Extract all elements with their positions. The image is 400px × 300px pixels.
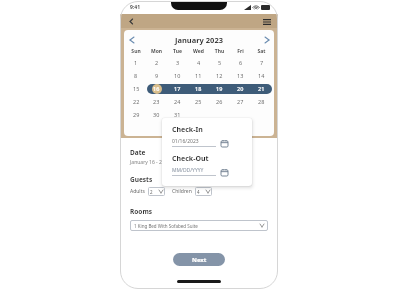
staticText: 9:41 bbox=[130, 4, 140, 11]
button[interactable]: 19 bbox=[209, 82, 230, 95]
staticText: January 16 - 21, 2023 bbox=[130, 159, 179, 166]
staticText: Sun bbox=[126, 48, 146, 55]
staticText: 14 bbox=[258, 72, 265, 79]
staticText: 10 bbox=[174, 72, 181, 79]
button[interactable]: 13 bbox=[230, 69, 251, 82]
button[interactable]: 12 bbox=[209, 69, 230, 82]
staticText: 9 bbox=[155, 72, 159, 79]
button[interactable]: 30 bbox=[146, 108, 167, 121]
staticText: Mon bbox=[146, 48, 167, 55]
button[interactable]: 9 bbox=[146, 69, 167, 82]
staticText: 13 bbox=[237, 72, 244, 79]
button[interactable]: 21 bbox=[251, 82, 272, 95]
button[interactable]: 20 bbox=[230, 82, 251, 95]
button[interactable]: 1 King Bed With Sofabed Suite bbox=[130, 220, 268, 231]
staticText: 19 bbox=[216, 85, 223, 92]
staticText: 28 bbox=[258, 98, 265, 105]
button[interactable]: 5 bbox=[209, 56, 230, 69]
staticText: 22 bbox=[133, 98, 140, 105]
staticText: 4 bbox=[197, 59, 201, 66]
staticText: 17 bbox=[174, 85, 181, 92]
staticText: Tue bbox=[167, 48, 188, 55]
button[interactable]: 24 bbox=[167, 95, 188, 108]
staticText: 3 bbox=[176, 59, 180, 66]
staticText: Adults bbox=[130, 188, 145, 195]
staticText: 16 bbox=[153, 85, 160, 92]
staticText: 29 bbox=[133, 111, 140, 118]
staticText: 15 bbox=[133, 85, 140, 92]
staticText: 01/16/2023 bbox=[172, 138, 199, 145]
staticText: 2 bbox=[155, 59, 159, 66]
staticText: 4 bbox=[197, 189, 200, 195]
button[interactable]: 8 bbox=[126, 69, 146, 82]
button[interactable]: 2 bbox=[148, 187, 165, 196]
staticText: 31 bbox=[174, 111, 181, 118]
staticText: Next bbox=[192, 256, 207, 264]
staticText: Wed bbox=[188, 48, 209, 55]
staticText: 26 bbox=[216, 98, 223, 105]
button[interactable]: Open calendar bbox=[220, 168, 228, 176]
staticText: Guests bbox=[130, 175, 153, 184]
button[interactable]: 17 bbox=[167, 82, 188, 95]
button[interactable]: 31 bbox=[167, 108, 188, 121]
staticText: Rooms bbox=[130, 207, 152, 216]
button[interactable]: 4 bbox=[188, 56, 209, 69]
staticText: 12 bbox=[216, 72, 223, 79]
staticText: Check-Out bbox=[172, 154, 209, 164]
staticText: MM/DD/YYYY bbox=[172, 167, 204, 174]
staticText: Check-In bbox=[172, 125, 203, 135]
button[interactable]: 4 bbox=[195, 187, 212, 196]
staticText: 18 bbox=[195, 85, 202, 92]
button[interactable]: Open calendar bbox=[220, 139, 228, 147]
button[interactable]: 26 bbox=[209, 95, 230, 108]
button[interactable]: 23 bbox=[146, 95, 167, 108]
staticText: 1 bbox=[134, 59, 138, 66]
button[interactable]: 18 bbox=[188, 82, 209, 95]
staticText: 27 bbox=[237, 98, 244, 105]
staticText: 25 bbox=[195, 98, 202, 105]
button[interactable]: 2 bbox=[146, 56, 167, 69]
staticText: Children bbox=[172, 188, 192, 195]
button[interactable]: 3 bbox=[167, 56, 188, 69]
staticText: Date bbox=[130, 148, 146, 157]
button[interactable]: 11 bbox=[188, 69, 209, 82]
button[interactable]: 6 bbox=[230, 56, 251, 69]
staticText: 11 bbox=[195, 72, 202, 79]
button[interactable]: 10 bbox=[167, 69, 188, 82]
staticText: 6 bbox=[239, 59, 243, 66]
staticText: Sat bbox=[251, 48, 272, 55]
staticText: January 2023 bbox=[137, 35, 261, 45]
button[interactable]: Back bbox=[126, 16, 136, 26]
staticText: 21 bbox=[258, 85, 265, 92]
button[interactable]: 27 bbox=[230, 95, 251, 108]
button[interactable]: 15 bbox=[126, 82, 146, 95]
staticText: 8 bbox=[134, 72, 138, 79]
button[interactable]: Next month bbox=[261, 34, 272, 45]
staticText: 5 bbox=[218, 59, 222, 66]
staticText: 24 bbox=[174, 98, 181, 105]
button[interactable]: 7 bbox=[251, 56, 272, 69]
button[interactable]: 28 bbox=[251, 95, 272, 108]
button[interactable]: Menu bbox=[261, 16, 272, 27]
button[interactable]: 16 bbox=[146, 82, 167, 95]
button[interactable]: Next bbox=[173, 253, 225, 266]
button[interactable]: 29 bbox=[126, 108, 146, 121]
staticText: 23 bbox=[153, 98, 160, 105]
staticText: 20 bbox=[237, 85, 244, 92]
staticText: 1 King Bed With Sofabed Suite bbox=[134, 223, 198, 229]
staticText: 30 bbox=[153, 111, 160, 118]
button[interactable]: 14 bbox=[251, 69, 272, 82]
staticText: 7 bbox=[260, 59, 264, 66]
staticText: 2 bbox=[150, 189, 153, 195]
button[interactable]: 22 bbox=[126, 95, 146, 108]
staticText: Thu bbox=[209, 48, 230, 55]
staticText: Fri bbox=[230, 48, 251, 55]
button[interactable]: 1 bbox=[126, 56, 146, 69]
button[interactable]: 25 bbox=[188, 95, 209, 108]
button[interactable]: Previous month bbox=[126, 34, 137, 45]
